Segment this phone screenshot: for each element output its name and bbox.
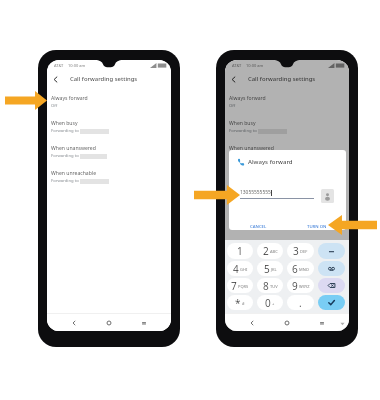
staticText: WXYZ	[299, 284, 310, 289]
staticText: 1	[237, 244, 243, 258]
button[interactable]: Always forward	[47, 92, 171, 117]
button[interactable]: Backspace	[318, 278, 345, 293]
staticText: Call forwarding settings	[248, 75, 316, 83]
button[interactable]: CANCEL	[248, 221, 269, 230]
staticText: 3	[293, 244, 299, 258]
button[interactable]: When unreachable	[47, 167, 171, 192]
staticText: TUV	[270, 284, 278, 289]
staticText: +	[272, 301, 275, 306]
button[interactable]: Voicemail	[318, 261, 345, 276]
staticText: 5	[264, 262, 270, 276]
button[interactable]: Recents	[136, 315, 152, 331]
staticText: .	[299, 296, 302, 310]
button[interactable]: .	[287, 295, 314, 310]
staticText: PQRS	[238, 284, 249, 289]
button[interactable]: *	[227, 295, 253, 310]
staticText: 7	[231, 279, 237, 293]
button[interactable]: Back	[66, 315, 82, 331]
button[interactable]: 1	[227, 243, 253, 259]
staticText: 13055555555	[240, 189, 271, 196]
button[interactable]: Done	[318, 295, 345, 310]
staticText: Always forward	[51, 95, 88, 102]
button[interactable]: When unanswered	[47, 142, 171, 167]
staticText: Forwarding to	[51, 153, 80, 159]
button[interactable]: Back	[49, 73, 62, 86]
staticText: 10:00 am	[68, 63, 86, 68]
staticText: AT&T	[54, 63, 64, 68]
staticText: TURN ON	[307, 223, 327, 229]
staticText: *	[235, 296, 241, 310]
button[interactable]: 8	[257, 278, 283, 293]
staticText: When unreachable	[51, 170, 97, 177]
staticText: Off	[229, 103, 236, 109]
staticText: When busy	[51, 120, 78, 127]
staticText: Forwarding to	[51, 178, 80, 184]
button[interactable]: 2	[257, 243, 283, 259]
button[interactable]: When busy	[225, 117, 349, 142]
button[interactable]: Always forward	[225, 92, 349, 117]
staticText: 6	[292, 262, 298, 276]
staticText: Call forwarding settings	[70, 75, 138, 83]
button[interactable]: Back	[227, 73, 240, 86]
button[interactable]: 0	[257, 295, 283, 310]
button[interactable]: When unreachable	[225, 167, 349, 192]
staticText: CANCEL	[250, 223, 267, 229]
button[interactable]: 7	[227, 278, 253, 293]
staticText: When unanswered	[229, 145, 274, 152]
button[interactable]: Recents	[314, 315, 330, 331]
staticText: GHI	[240, 267, 248, 272]
button[interactable]: Home	[279, 315, 295, 331]
button[interactable]: 3	[287, 243, 314, 259]
staticText: 4	[233, 262, 239, 276]
button[interactable]: Contacts	[321, 189, 334, 203]
staticText: Forwarding to	[229, 128, 258, 134]
staticText: 10:00 am	[246, 63, 264, 68]
button[interactable]: Pause	[318, 243, 345, 259]
button[interactable]: 5	[257, 261, 283, 276]
button[interactable]: When unanswered	[225, 142, 349, 167]
button[interactable]: TURN ON	[305, 221, 329, 230]
button[interactable]: Back	[244, 315, 260, 331]
staticText: 0	[265, 296, 271, 310]
staticText: 9	[292, 279, 298, 293]
staticText: AT&T	[232, 63, 242, 68]
button[interactable]: 4	[227, 261, 253, 276]
staticText: When busy	[229, 120, 256, 127]
button[interactable]: Home	[101, 315, 117, 331]
staticText: Off	[51, 103, 58, 109]
staticText: 8	[263, 279, 269, 293]
staticText: 2	[263, 244, 269, 258]
button[interactable]: When busy	[47, 117, 171, 142]
staticText: DEF	[300, 249, 308, 254]
staticText: #	[242, 301, 245, 306]
staticText: MNO	[299, 267, 309, 272]
button[interactable]: 6	[287, 261, 314, 276]
staticText: JKL	[271, 267, 277, 272]
staticText: Always forward	[229, 95, 266, 102]
staticText: Always forward	[248, 158, 293, 166]
staticText: When unanswered	[51, 145, 96, 152]
button[interactable]: Hide keyboard	[336, 317, 348, 329]
staticText: ABC	[270, 249, 278, 254]
button[interactable]: 9	[287, 278, 314, 293]
staticText: Forwarding to	[51, 128, 80, 134]
